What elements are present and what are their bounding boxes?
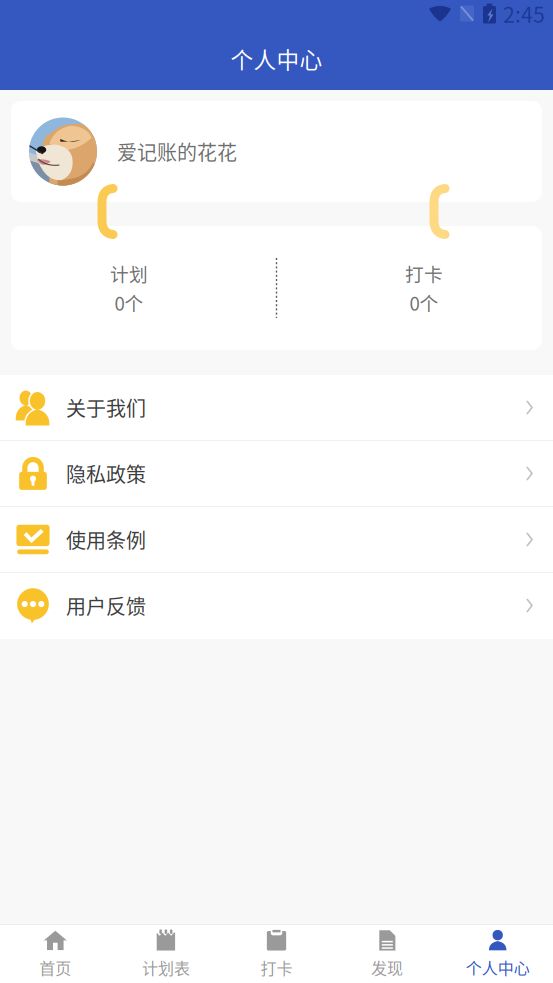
staticText: 使用条例 [66, 525, 146, 554]
staticText: 打卡 [405, 260, 443, 287]
staticText: 用户反馈 [66, 591, 146, 620]
button[interactable]: 计划表 [111, 925, 221, 983]
staticText: 计划表 [142, 956, 190, 979]
button[interactable]: 隐私政策 [0, 441, 553, 507]
staticText: 爱记账的花花 [117, 137, 237, 166]
button[interactable]: 关于我们 [0, 375, 553, 441]
staticText: 隐私政策 [66, 459, 146, 488]
staticText: 0个 [114, 289, 143, 316]
button[interactable]: 个人中心 [442, 925, 553, 983]
button[interactable]: 计划 [11, 226, 276, 350]
staticText: 个人中心 [230, 42, 322, 75]
button[interactable]: 打卡 [276, 226, 542, 350]
staticText: 关于我们 [66, 393, 146, 422]
button[interactable]: 用户反馈 [0, 573, 553, 639]
button[interactable]: 首页 [0, 925, 111, 983]
staticText: 发现 [371, 956, 403, 979]
staticText: 计划 [110, 260, 148, 287]
staticText: 0个 [409, 289, 438, 316]
button[interactable]: 打卡 [221, 925, 332, 983]
staticText: 个人中心 [466, 956, 530, 979]
staticText: 首页 [39, 956, 71, 979]
staticText: 打卡 [260, 956, 292, 979]
button[interactable]: 爱记账的花花 [11, 101, 542, 202]
staticText: 2:45 [503, 0, 545, 29]
button[interactable]: 发现 [332, 925, 442, 983]
button[interactable]: 使用条例 [0, 507, 553, 573]
